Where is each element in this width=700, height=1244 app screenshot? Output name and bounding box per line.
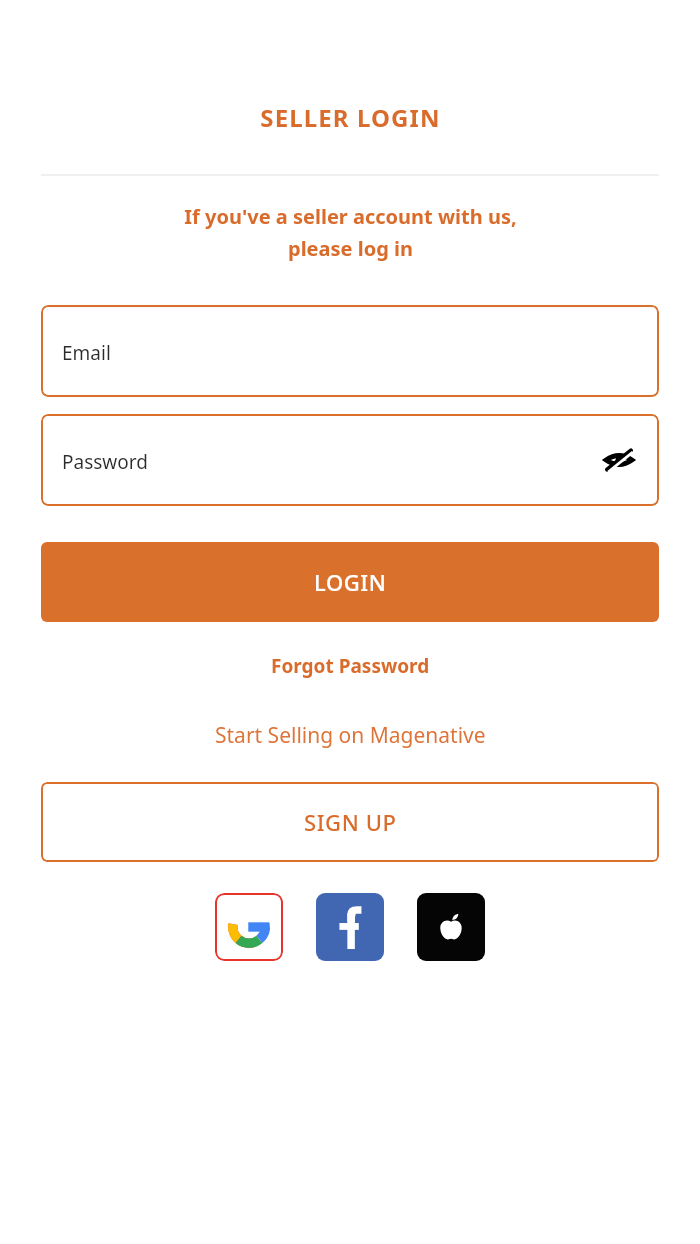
staticText: Forgot Password <box>271 653 430 679</box>
staticText: Password <box>62 449 148 475</box>
staticText: SELLER LOGIN <box>260 101 441 134</box>
button[interactable]: SIGN UP <box>41 782 659 862</box>
staticText: SIGN UP <box>304 807 397 837</box>
button[interactable]: Sign in with Facebook <box>316 893 384 961</box>
button[interactable]: Sign in with Apple <box>417 893 485 961</box>
button[interactable]: Forgot Password <box>253 644 448 688</box>
staticText: LOGIN <box>314 567 387 597</box>
staticText: If you've a seller account with us, plea… <box>184 203 517 262</box>
button[interactable]: Start Selling on Magenative <box>197 713 504 758</box>
button[interactable]: Password <box>41 414 659 506</box>
button[interactable]: Email <box>41 305 659 397</box>
staticText: Start Selling on Magenative <box>215 721 486 750</box>
button[interactable]: Sign in with Google <box>215 893 283 961</box>
staticText: Email <box>62 340 111 366</box>
button[interactable]: LOGIN <box>41 542 659 622</box>
button[interactable]: Show password <box>599 440 639 480</box>
